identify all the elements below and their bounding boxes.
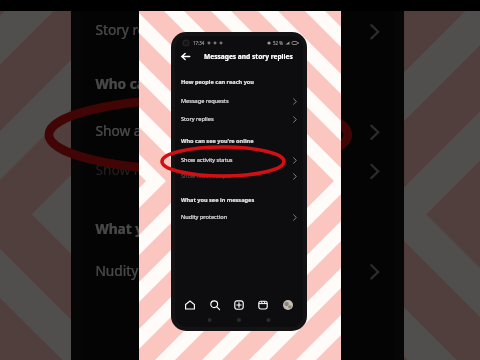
- button[interactable]: Profile: [279, 296, 297, 314]
- staticText: Message requests: [181, 97, 229, 105]
- staticText: Show read receipts: [95, 160, 218, 180]
- staticText: How people can reach you: [181, 78, 254, 86]
- staticText: Story replies: [181, 115, 214, 123]
- button[interactable]: Show read receipts: [81, 148, 394, 192]
- button[interactable]: Story replies: [175, 110, 303, 128]
- staticText: 17:34: [193, 40, 205, 46]
- button[interactable]: Show activity status: [81, 109, 394, 153]
- staticText: 52 %: [273, 40, 283, 46]
- button[interactable]: Show activity status: [175, 151, 303, 169]
- button[interactable]: Nudity protection: [81, 249, 394, 293]
- button[interactable]: Search: [206, 296, 224, 314]
- button[interactable]: Home: [181, 296, 199, 314]
- button[interactable]: Reels: [254, 296, 272, 314]
- staticText: Who can see you're online: [181, 137, 254, 145]
- button[interactable]: Show read receipts: [175, 167, 303, 185]
- staticText: What you see in messages: [181, 196, 255, 204]
- staticText: What you see in messages: [95, 219, 277, 239]
- staticText: Nudity protection: [181, 213, 228, 221]
- staticText: Who can see you're online: [95, 75, 274, 94]
- staticText: Show read receipts: [181, 172, 231, 180]
- staticText: Show activity status: [95, 121, 223, 141]
- button[interactable]: Story replies: [81, 8, 394, 53]
- staticText: Show activity status: [181, 156, 233, 164]
- staticText: Nudity protection: [95, 261, 211, 280]
- button[interactable]: Nudity protection: [175, 208, 303, 226]
- button[interactable]: Create: [230, 296, 248, 314]
- staticText: Messages and story replies: [204, 52, 293, 61]
- staticText: Story replies: [95, 21, 176, 40]
- button[interactable]: Back: [175, 46, 195, 66]
- button[interactable]: Message requests: [175, 92, 303, 110]
